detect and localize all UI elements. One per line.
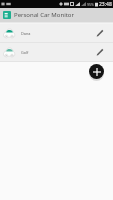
staticText: 23:48 bbox=[99, 1, 112, 8]
button[interactable]: Edit Golf bbox=[95, 47, 105, 57]
staticText: 95% bbox=[87, 2, 94, 7]
staticText: Golf bbox=[21, 50, 29, 55]
staticText: Personal Car Monitor bbox=[14, 11, 74, 19]
staticText: Dana bbox=[21, 31, 31, 36]
button[interactable]: Add car bbox=[89, 64, 104, 79]
button[interactable]: Dana bbox=[0, 24, 113, 42]
button[interactable]: Edit Dana bbox=[95, 28, 105, 38]
button[interactable]: Golf bbox=[0, 43, 113, 61]
